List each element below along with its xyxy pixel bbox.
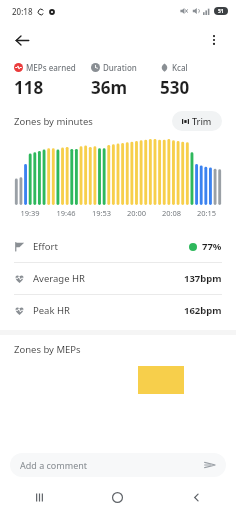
staticText: 20:18 (12, 6, 33, 17)
staticText: 77% (202, 240, 222, 253)
staticText: 162bpm (184, 304, 222, 317)
staticText: Average HR (33, 272, 85, 285)
button[interactable]: Back (8, 26, 36, 54)
staticText: 19:53 (84, 208, 119, 218)
staticText: 137bpm (184, 272, 222, 285)
staticText: 51 (218, 8, 224, 15)
button[interactable]: More options (200, 26, 228, 54)
button[interactable]: Trim (172, 111, 222, 131)
button[interactable]: Effort (0, 231, 236, 262)
staticText: 20:00 (119, 208, 154, 218)
staticText: Kcal (172, 62, 188, 73)
staticText: 20:15 (189, 208, 224, 218)
staticText: 36m (91, 76, 128, 99)
button[interactable]: Recents (0, 482, 78, 512)
staticText: Zones by minutes (14, 115, 93, 128)
button[interactable]: Peak HR (0, 295, 236, 326)
staticText: Add a comment (20, 459, 88, 471)
other: Send (204, 459, 216, 471)
staticText: Trim (192, 115, 212, 127)
button[interactable]: Home (78, 482, 157, 512)
button[interactable]: Average HR (0, 263, 236, 294)
staticText: 20:08 (154, 208, 189, 218)
staticText: Zones by MEPs (14, 343, 81, 356)
staticText: 530 (160, 76, 190, 99)
staticText: 19:39 (12, 208, 48, 218)
staticText: MEPs earned (26, 62, 76, 73)
button[interactable]: Add a comment (10, 453, 226, 477)
staticText: 118 (14, 76, 44, 99)
staticText: Effort (33, 240, 58, 253)
button[interactable]: Back (157, 482, 236, 512)
staticText: Peak HR (33, 304, 70, 317)
staticText: Duration (103, 62, 137, 73)
staticText: 19:46 (48, 208, 84, 218)
